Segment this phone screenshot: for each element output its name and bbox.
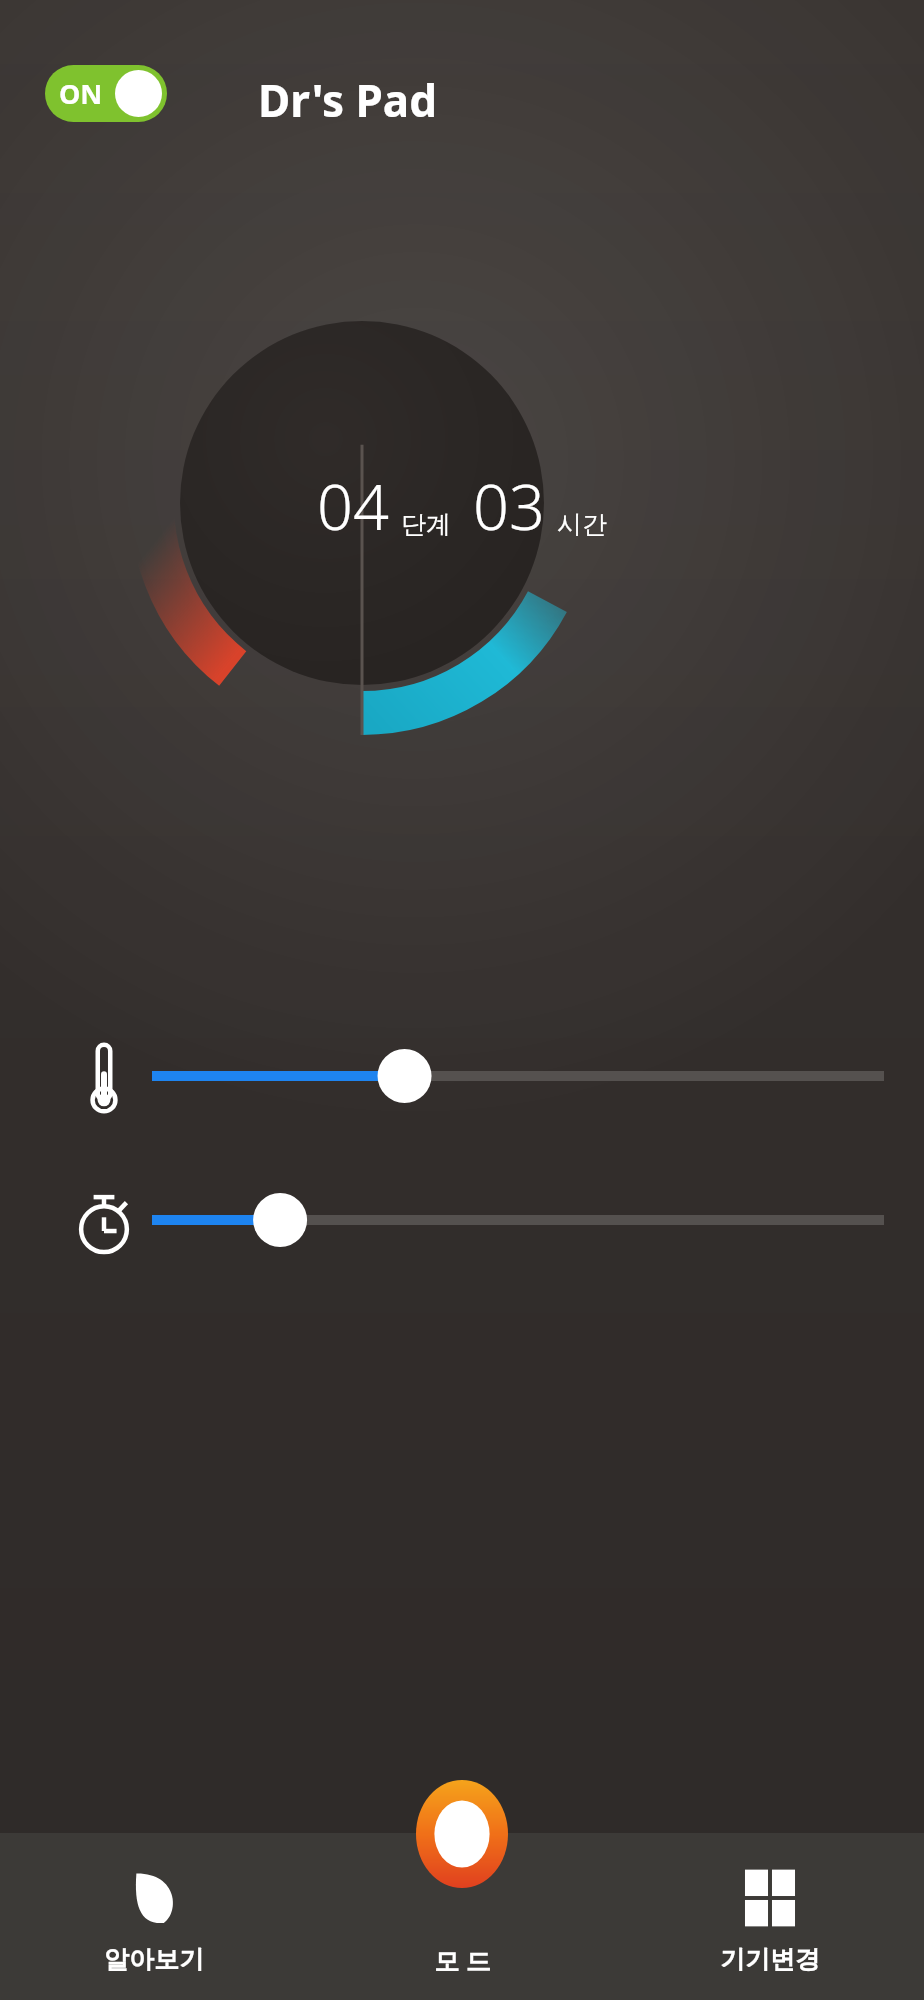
staticText: 모 드 [434, 1943, 491, 1977]
button[interactable]: 기기변경 [616, 1833, 924, 2000]
staticText: 03 [473, 463, 545, 549]
button[interactable]: Adjust [0, 1030, 924, 1122]
button[interactable]: Mode [416, 1780, 508, 1888]
staticText: 기기변경 [720, 1944, 820, 1975]
button[interactable]: 모 드 [308, 1833, 616, 2000]
staticText: Dr's Pad [258, 70, 438, 130]
button[interactable]: 알아보기 [0, 1833, 308, 2000]
staticText: 04 [317, 463, 389, 549]
staticText: 알아보기 [104, 1944, 204, 1975]
staticText: ON [59, 75, 103, 112]
button[interactable]: ON [45, 65, 167, 122]
staticText: 시간 [557, 509, 607, 540]
other: Adjust [78, 1174, 130, 1266]
button[interactable]: Adjust [0, 1174, 924, 1266]
staticText: 단계 [401, 509, 451, 540]
other: Adjust [78, 1030, 130, 1122]
